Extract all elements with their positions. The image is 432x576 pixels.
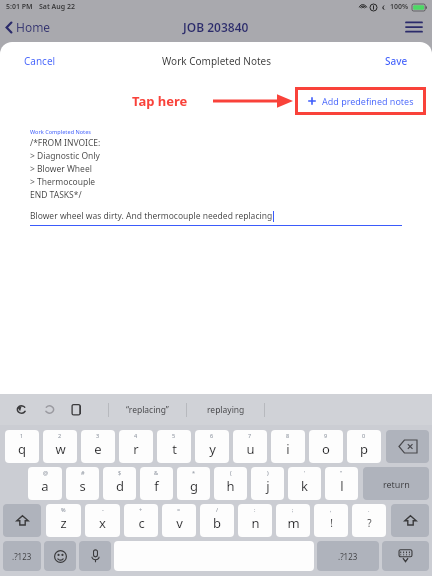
button[interactable]: 4: [119, 430, 153, 463]
button[interactable]: -: [85, 504, 120, 537]
button[interactable]: Save: [379, 50, 414, 72]
staticText: replaying: [207, 404, 245, 416]
button[interactable]: /: [200, 504, 234, 537]
staticText: j: [266, 477, 270, 495]
staticText: p: [360, 440, 368, 458]
button[interactable]: $: [103, 467, 136, 500]
staticText: c: [138, 514, 145, 532]
button[interactable]: Emoji: [44, 541, 76, 571]
staticText: g: [190, 477, 198, 495]
staticText: #: [81, 469, 85, 476]
button[interactable]: ,: [314, 504, 348, 537]
button[interactable]: 1: [5, 430, 39, 463]
button[interactable]: Home: [0, 16, 59, 38]
button[interactable]: Redo: [40, 400, 59, 419]
staticText: > Blower Wheel: [30, 163, 92, 175]
staticText: 3: [96, 432, 100, 439]
button[interactable]: return: [363, 467, 429, 500]
button[interactable]: 8: [271, 430, 305, 463]
staticText: Save: [385, 54, 408, 68]
button[interactable]: Shift: [3, 504, 41, 537]
button[interactable]: Undo: [12, 400, 31, 419]
staticText: *: [192, 469, 196, 476]
button[interactable]: Cancel: [18, 50, 62, 72]
staticText: ?: [367, 516, 372, 530]
button[interactable]: 7: [233, 430, 267, 463]
staticText: a: [41, 477, 49, 495]
button[interactable]: ': [288, 467, 321, 500]
button[interactable]: 5: [157, 430, 191, 463]
button[interactable]: .?123: [317, 541, 379, 571]
staticText: Cancel: [24, 54, 56, 68]
button[interactable]: *: [177, 467, 210, 500]
staticText: 1: [20, 432, 24, 439]
button[interactable]: 6: [195, 430, 229, 463]
staticText: (: [230, 469, 232, 476]
button[interactable]: Paste: [68, 400, 85, 419]
staticText: Add predefined notes: [322, 95, 414, 107]
button[interactable]: Shift: [391, 504, 429, 537]
button[interactable]: .?123: [3, 541, 41, 571]
staticText: 8: [286, 432, 290, 439]
button[interactable]: 3: [81, 430, 115, 463]
button[interactable]: #: [66, 467, 99, 500]
button[interactable]: ;: [276, 504, 310, 537]
staticText: -: [102, 506, 104, 513]
staticText: n: [251, 514, 260, 532]
staticText: +: [139, 506, 143, 513]
button[interactable]: Add predefined notes: [298, 90, 423, 112]
button[interactable]: Backspace: [386, 430, 429, 463]
staticText: /: [216, 506, 219, 513]
staticText: y: [209, 440, 216, 458]
staticText: z: [60, 514, 67, 532]
staticText: Blower wheel was dirty. And thermocouple…: [30, 210, 273, 222]
button[interactable]: (: [214, 467, 247, 500]
staticText: 2: [58, 432, 62, 439]
staticText: s: [79, 477, 86, 495]
button[interactable]: replaying: [187, 404, 264, 416]
staticText: “replacing”: [126, 404, 169, 416]
button[interactable]: ): [251, 467, 284, 500]
button[interactable]: ": [325, 467, 358, 500]
staticText: ;: [292, 506, 294, 513]
staticText: @: [43, 469, 48, 476]
button[interactable]: Hide keyboard: [382, 541, 429, 571]
staticText: 5: [172, 432, 176, 439]
button[interactable]: 0: [347, 430, 381, 463]
staticText: .?123: [12, 551, 32, 562]
staticText: /*FROM INVOICE:: [30, 137, 101, 149]
button[interactable]: @: [28, 467, 62, 500]
button[interactable]: +: [124, 504, 158, 537]
staticText: > Diagnostic Only: [30, 150, 100, 162]
staticText: 7: [248, 432, 252, 439]
staticText: Work Completed Notes: [30, 128, 92, 135]
staticText: $: [118, 469, 122, 476]
staticText: Tap here: [132, 92, 188, 110]
staticText: t: [172, 440, 177, 458]
button[interactable]: %: [46, 504, 81, 537]
button[interactable]: :: [238, 504, 272, 537]
button[interactable]: .: [352, 504, 386, 537]
staticText: END TASKS*/: [30, 189, 82, 201]
staticText: =: [177, 506, 181, 513]
button[interactable]: Blower wheel was dirty. And thermocouple…: [30, 210, 402, 226]
button[interactable]: “replacing”: [109, 404, 186, 416]
staticText: k: [301, 477, 308, 495]
staticText: Sat Aug 22: [39, 2, 75, 12]
button[interactable]: Menu: [396, 16, 432, 38]
staticText: ,: [330, 506, 332, 513]
button[interactable]: 2: [43, 430, 77, 463]
staticText: ': [304, 469, 306, 476]
staticText: Work Completed Notes: [162, 54, 271, 68]
button[interactable]: =: [162, 504, 196, 537]
button[interactable]: 9: [309, 430, 343, 463]
staticText: v: [176, 514, 183, 532]
staticText: .?123: [338, 551, 358, 562]
staticText: q: [18, 440, 26, 458]
button[interactable]: &: [140, 467, 173, 500]
staticText: ": [340, 469, 343, 476]
staticText: !: [330, 516, 333, 530]
button[interactable]: Dictate: [79, 541, 111, 571]
staticText: Home: [16, 19, 51, 35]
